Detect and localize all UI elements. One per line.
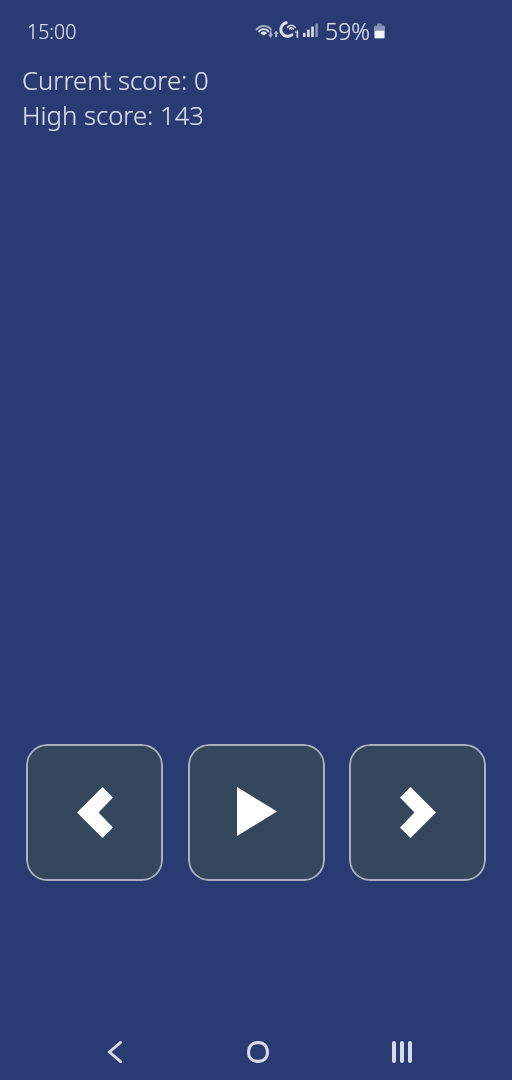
button[interactable]: Next: [349, 744, 486, 881]
button[interactable]: Back: [91, 1028, 139, 1076]
button[interactable]: Previous: [26, 744, 163, 881]
staticText: Current score: 0: [22, 63, 209, 98]
button[interactable]: Recent apps: [378, 1028, 426, 1076]
staticText: High score: 143: [22, 98, 205, 133]
button[interactable]: Home: [234, 1028, 282, 1076]
staticText: 59%: [325, 15, 370, 46]
staticText: 15:00: [27, 18, 77, 45]
button[interactable]: Play: [188, 744, 325, 881]
